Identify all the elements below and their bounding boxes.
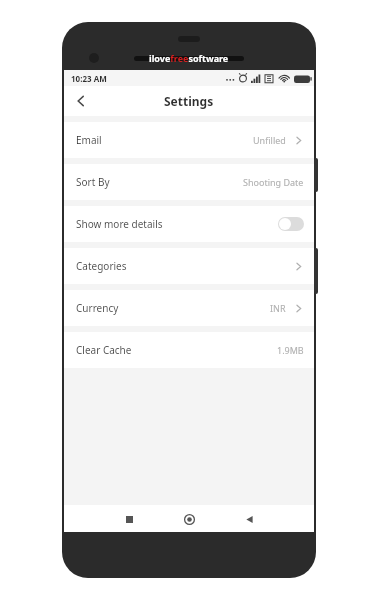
button[interactable]: Back	[236, 506, 262, 532]
button[interactable]: Sort By	[64, 164, 314, 200]
staticText: Unfilled	[253, 134, 286, 146]
button[interactable]: Show more details	[64, 206, 314, 242]
button[interactable]: Currency	[64, 290, 314, 326]
button[interactable]: Recents	[116, 506, 142, 532]
staticText: 10:23 AM	[71, 73, 107, 84]
button[interactable]: Home	[176, 506, 202, 532]
staticText: Categories	[76, 259, 127, 273]
button[interactable]: Back	[64, 86, 98, 116]
staticText: Show more details	[76, 217, 163, 231]
staticText: Sort By	[76, 175, 110, 189]
staticText: Clear Cache	[76, 343, 132, 357]
staticText: INR	[270, 302, 286, 314]
button[interactable]: Categories	[64, 248, 314, 284]
staticText: Currency	[76, 301, 119, 315]
staticText: Email	[76, 133, 102, 147]
staticText: 1.9MB	[277, 344, 304, 356]
button[interactable]: Show more details toggle	[278, 217, 304, 231]
staticText: ilovefreesoftware	[149, 52, 229, 64]
button[interactable]: Clear Cache	[64, 332, 314, 368]
staticText: Shooting Date	[243, 176, 304, 188]
button[interactable]: Email	[64, 122, 314, 158]
staticText: Settings	[164, 93, 214, 109]
